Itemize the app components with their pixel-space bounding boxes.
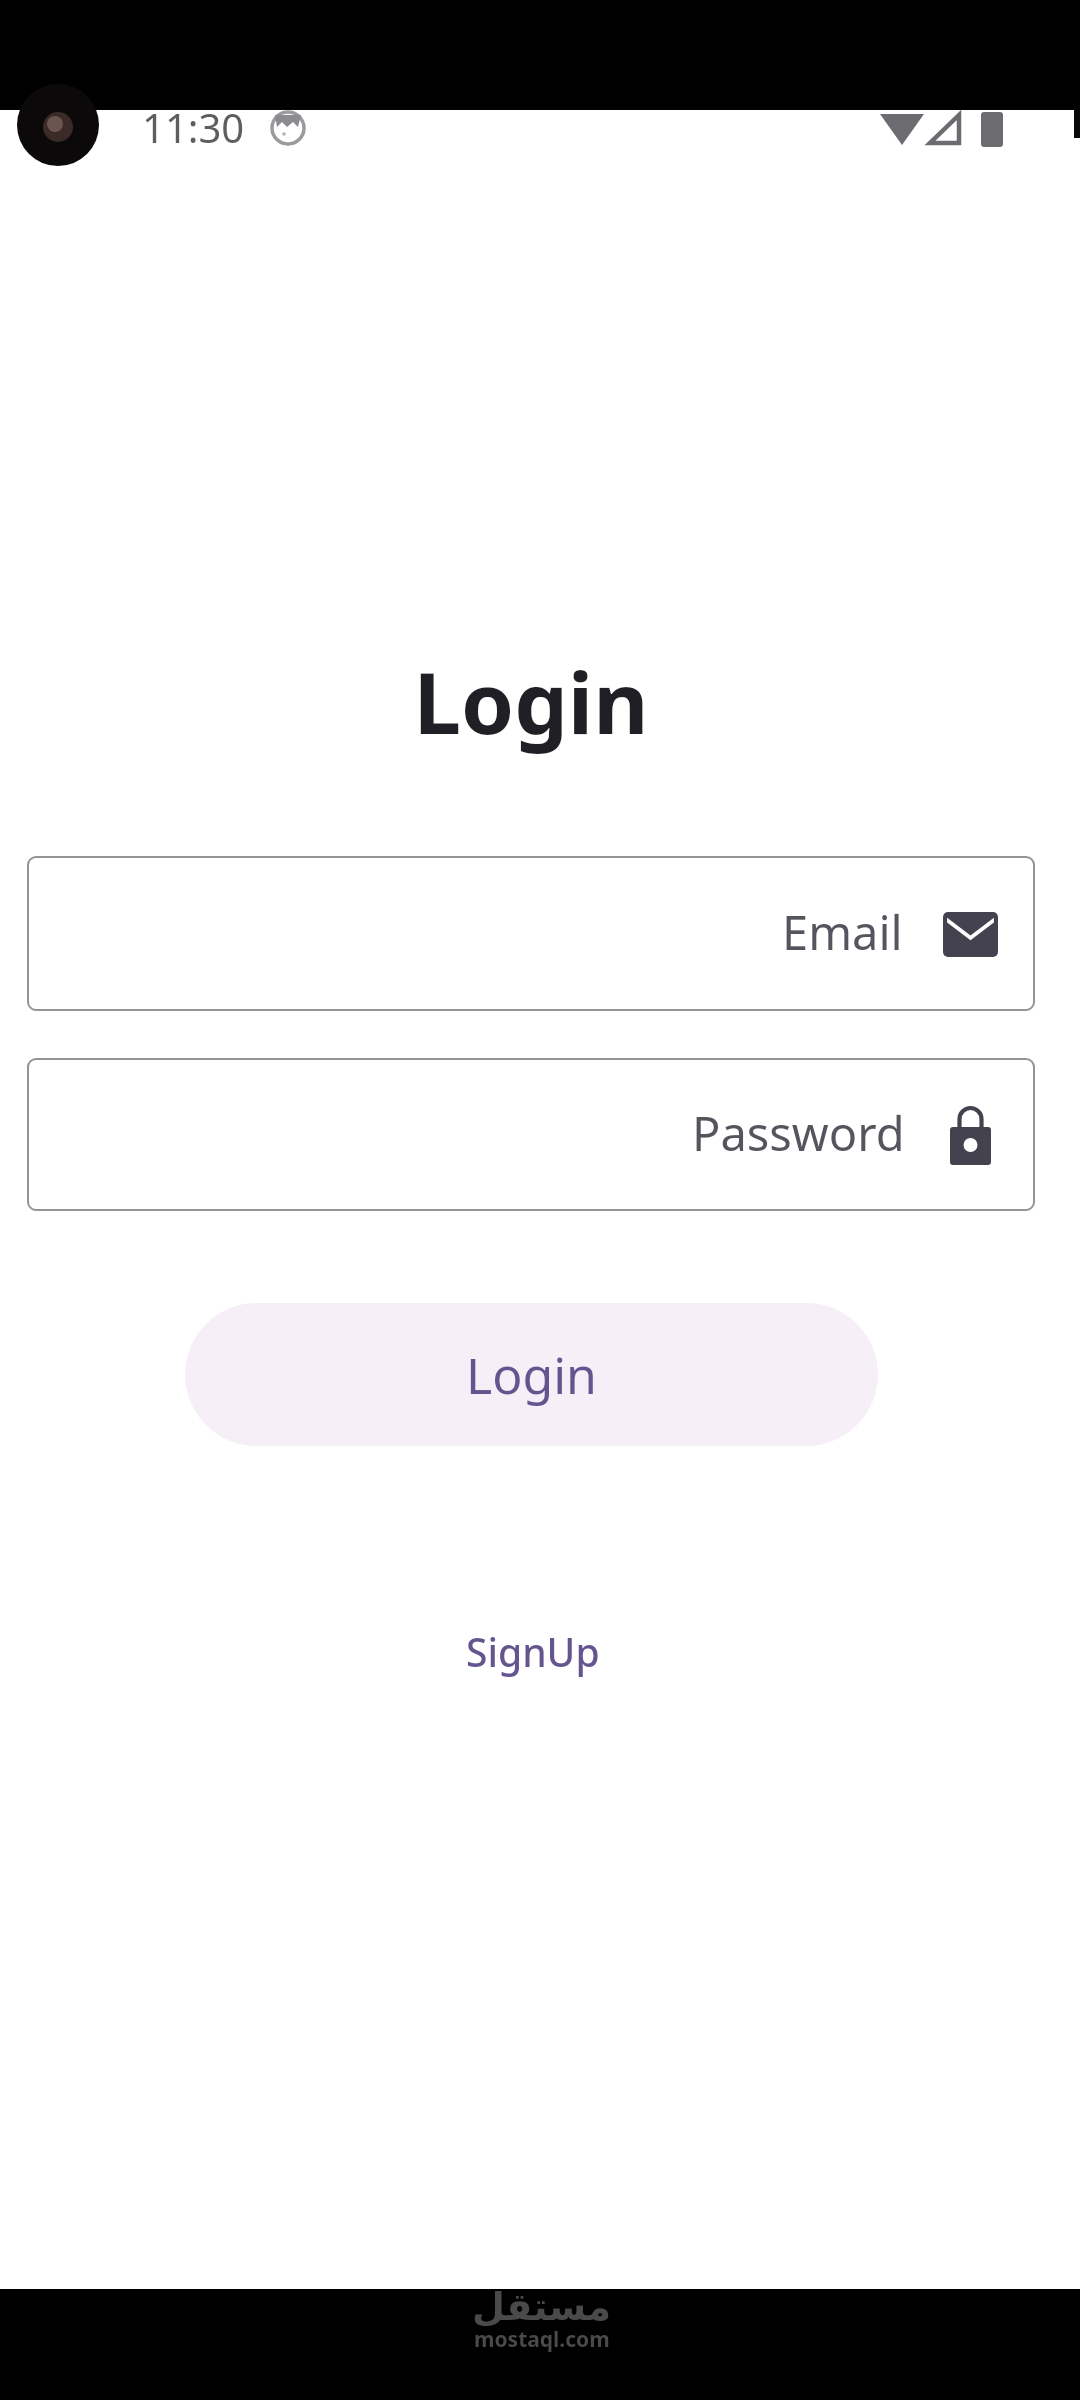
button[interactable]: Login: [185, 1303, 878, 1446]
staticText: Login: [466, 1341, 597, 1409]
other: Password: [950, 1106, 991, 1165]
button[interactable]: SignUp: [442, 1613, 624, 1690]
staticText: مستقل: [472, 2285, 611, 2329]
staticText: mostaql.com: [474, 2325, 610, 2354]
staticText: Login: [0, 643, 1071, 759]
button[interactable]: Password: [27, 1058, 1035, 1211]
staticText: Password: [692, 1101, 905, 1165]
staticText: 11:30: [142, 100, 245, 154]
button[interactable]: Email: [27, 856, 1035, 1011]
staticText: SignUp: [466, 1625, 600, 1678]
staticText: Email: [782, 900, 903, 964]
other: Email: [943, 912, 998, 957]
